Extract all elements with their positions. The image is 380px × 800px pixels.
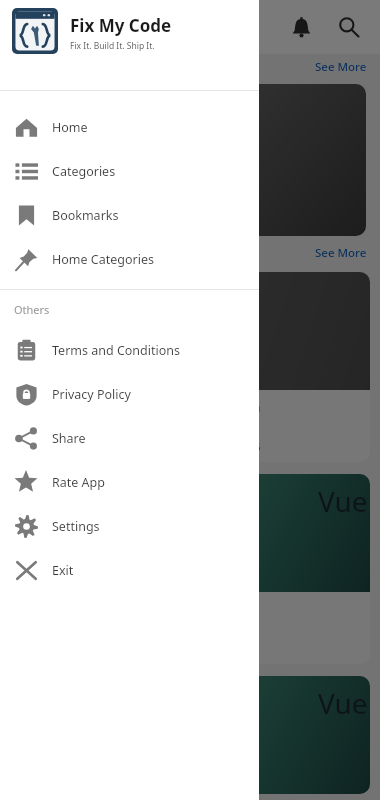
- staticText: See More: [315, 245, 367, 261]
- staticText: Categories: [52, 163, 116, 180]
- staticText: Terms and Conditions: [52, 342, 181, 359]
- button[interactable]: See More: [313, 57, 369, 77]
- button[interactable]: Share: [0, 416, 259, 460]
- staticText: LARAVEL 12 AND VUE: [10, 544, 208, 571]
- button[interactable]: Categories: [0, 149, 259, 193]
- staticText: Rate App: [52, 474, 105, 491]
- staticText: Fix My Code: [70, 14, 172, 37]
- staticText: Vue: [318, 482, 368, 520]
- button[interactable]: See More: [313, 243, 369, 263]
- button[interactable]: [194, 84, 366, 236]
- button[interactable]: Search: [330, 8, 368, 46]
- staticText: Others: [14, 302, 50, 317]
- staticText: See More: [315, 59, 367, 75]
- staticText: fixmycode.in: [14, 212, 68, 224]
- button[interactable]: Home: [0, 105, 259, 149]
- button[interactable]: Vue: [10, 676, 370, 794]
- staticText: CRUD: [10, 510, 55, 536]
- staticText: Privacy Policy: [52, 386, 131, 403]
- button[interactable]: Rate App: [0, 460, 259, 504]
- staticText: www.fixmycode.in: [22, 571, 91, 582]
- staticText: Laravel + Vue + Inertia Theme: [22, 416, 204, 434]
- button[interactable]: How to Convert a Node.js Theme into a: [10, 272, 370, 462]
- staticText: Fix It. Build It. Ship It.: [70, 40, 155, 52]
- button[interactable]: Settings: [0, 504, 259, 548]
- staticText: Share: [52, 430, 86, 447]
- staticText: aravel: [12, 162, 85, 199]
- button[interactable]: Notifications: [282, 8, 320, 46]
- staticText: 20-05-2025: [203, 439, 261, 454]
- staticText: Home: [52, 119, 88, 136]
- button[interactable]: Terms and Conditions: [0, 328, 259, 372]
- staticText: Settings: [52, 518, 100, 535]
- staticText: Bookmarks: [52, 207, 119, 224]
- staticText: Home Categories: [52, 251, 154, 268]
- button[interactable]: Vue: [10, 474, 370, 664]
- staticText: Exit: [52, 562, 74, 579]
- button[interactable]: Home Categories: [0, 237, 259, 281]
- button[interactable]: Bookmarks: [0, 193, 259, 237]
- button[interactable]: Privacy Policy: [0, 372, 259, 416]
- staticText: How to Convert a Node.js Theme into a: [22, 398, 261, 416]
- button[interactable]: Exit: [0, 548, 259, 592]
- button[interactable]: aravel: [12, 84, 184, 236]
- staticText: Vue: [318, 684, 368, 722]
